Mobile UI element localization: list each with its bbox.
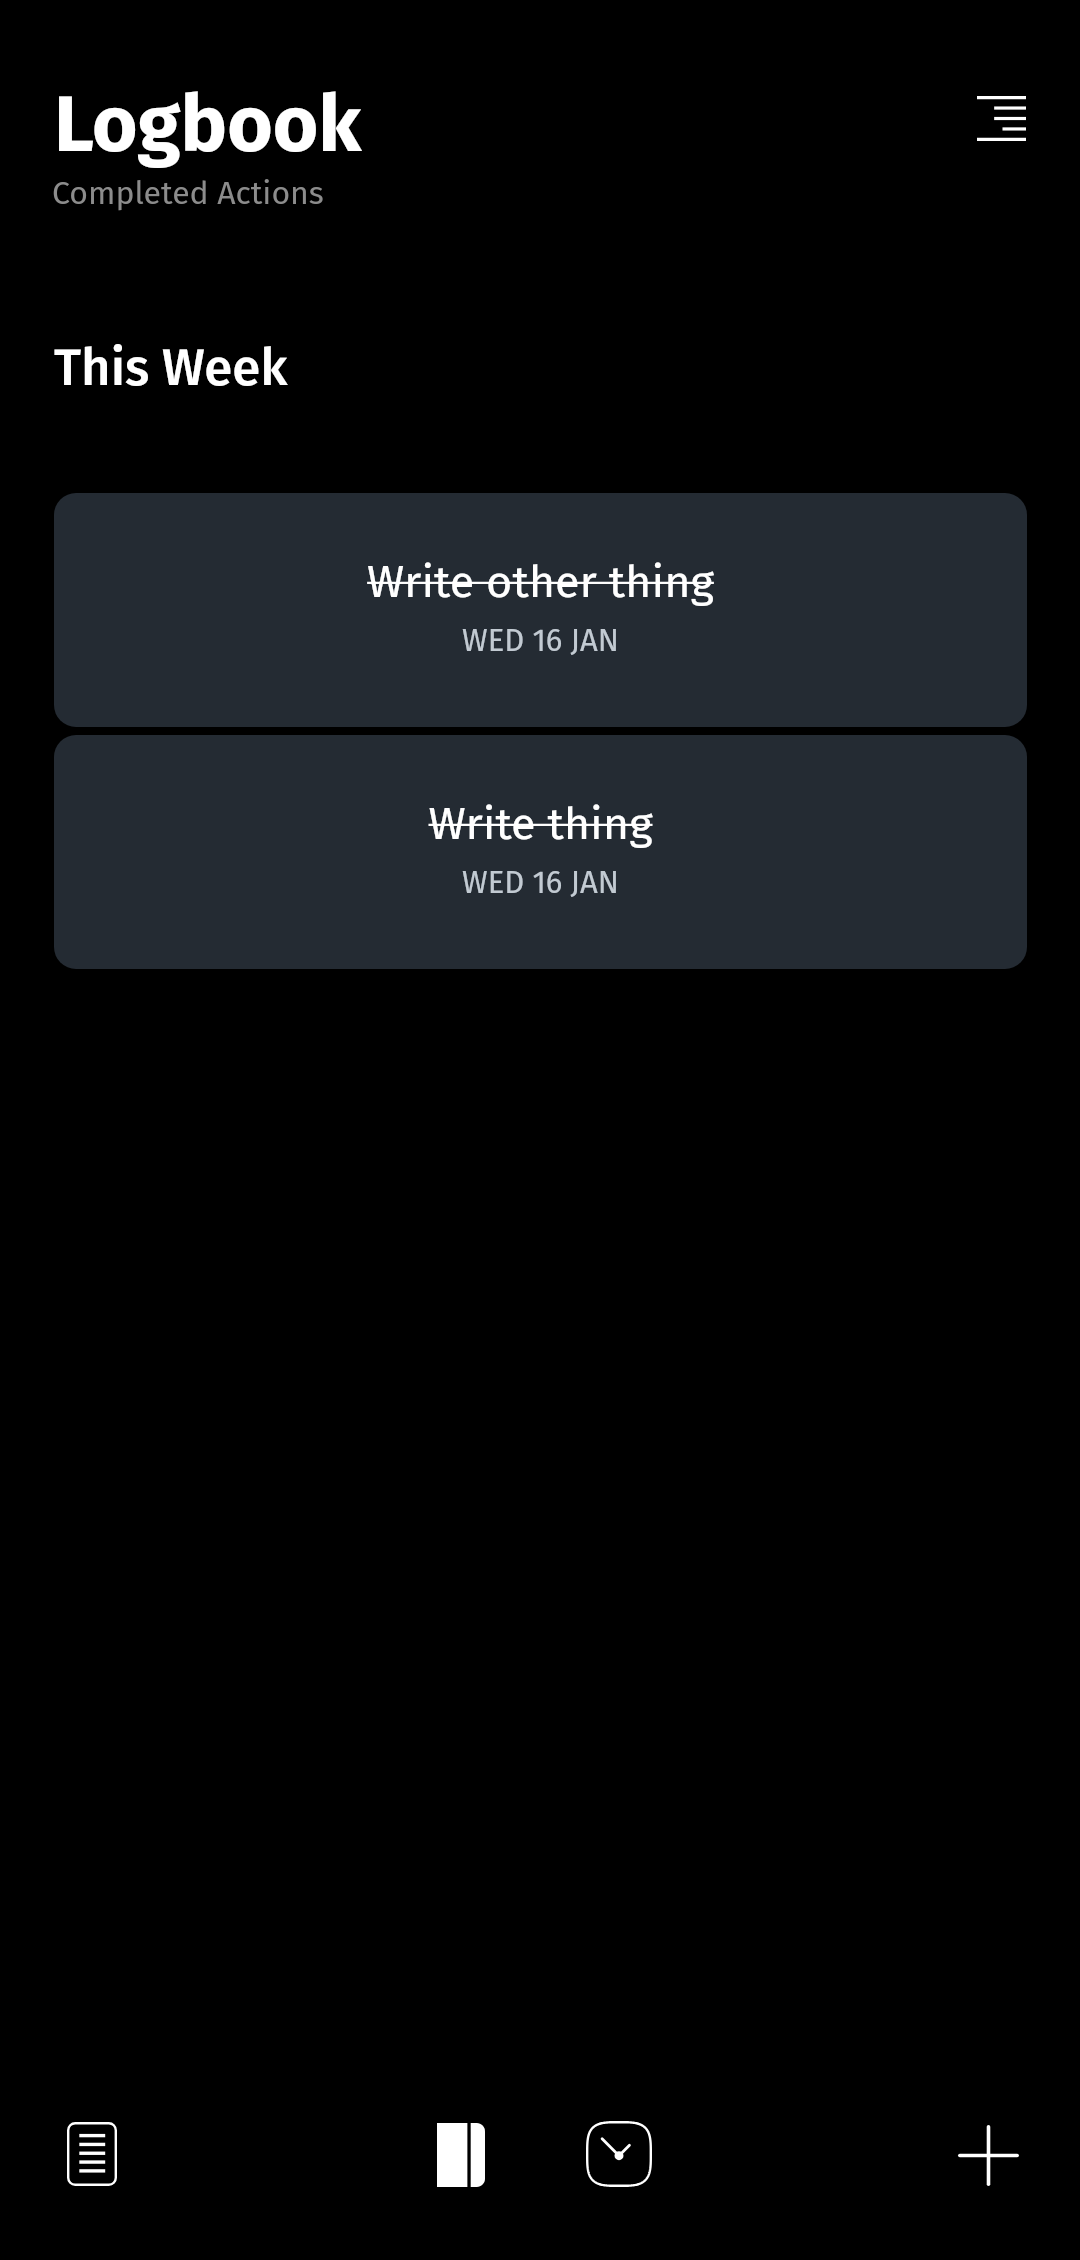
button[interactable]: Add <box>942 2109 1034 2201</box>
staticText: Write other thing <box>367 555 714 609</box>
button[interactable]: Logbook <box>46 2108 138 2200</box>
button[interactable]: Write other thing <box>54 493 1027 727</box>
button[interactable]: Upcoming <box>573 2108 665 2200</box>
button[interactable]: Sort <box>954 71 1048 165</box>
button[interactable]: Today <box>415 2109 507 2201</box>
staticText: This Week <box>54 337 288 398</box>
staticText: Logbook <box>54 78 362 172</box>
staticText: WED 16 JAN <box>462 622 619 659</box>
staticText: Completed Actions <box>52 174 324 212</box>
staticText: WED 16 JAN <box>462 864 619 901</box>
button[interactable]: Write thing <box>54 735 1027 969</box>
staticText: Write thing <box>428 797 653 851</box>
